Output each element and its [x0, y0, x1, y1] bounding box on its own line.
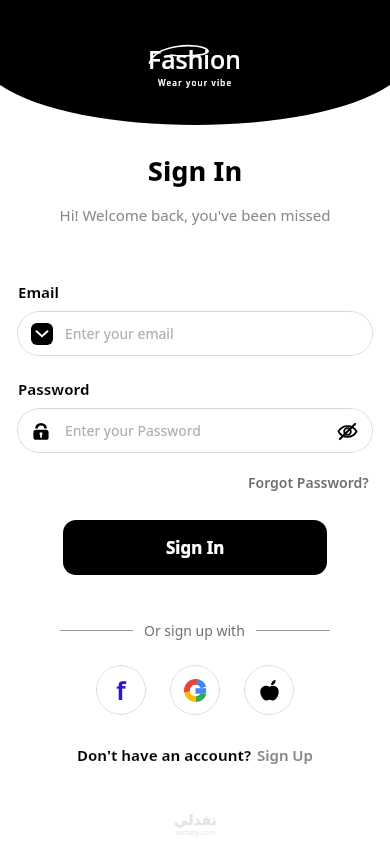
- staticText: Wear your vibe: [158, 77, 233, 88]
- button[interactable]: Sign in with Google: [170, 665, 220, 715]
- button[interactable]: Enter your email: [17, 311, 373, 356]
- staticText: Sign In: [0, 152, 390, 189]
- staticText: Enter your Password: [65, 421, 333, 440]
- staticText: نفذلي: [174, 812, 217, 828]
- staticText: Or sign up with: [144, 621, 245, 640]
- staticText: Password: [18, 379, 90, 399]
- staticText: Fashion: [148, 42, 242, 76]
- staticText: Hi! Welcome back, you've been missed: [0, 205, 390, 225]
- button[interactable]: Sign Up: [257, 745, 313, 765]
- button[interactable]: Enter your Password: [17, 408, 373, 453]
- staticText: nafazly.com: [176, 828, 215, 838]
- staticText: Enter your email: [65, 324, 174, 343]
- staticText: Sign In: [166, 536, 225, 559]
- staticText: f: [116, 673, 126, 707]
- staticText: Forgot Password?: [248, 473, 369, 492]
- staticText: Sign Up: [257, 745, 313, 765]
- staticText: Email: [18, 282, 59, 302]
- staticText: Don't have an account?: [77, 745, 252, 765]
- button[interactable]: Sign in with Apple: [244, 665, 294, 715]
- button[interactable]: Forgot Password?: [244, 469, 373, 496]
- button[interactable]: Show password: [333, 417, 361, 445]
- button[interactable]: Sign in with Facebook: [96, 665, 146, 715]
- button[interactable]: Sign In: [63, 520, 327, 575]
